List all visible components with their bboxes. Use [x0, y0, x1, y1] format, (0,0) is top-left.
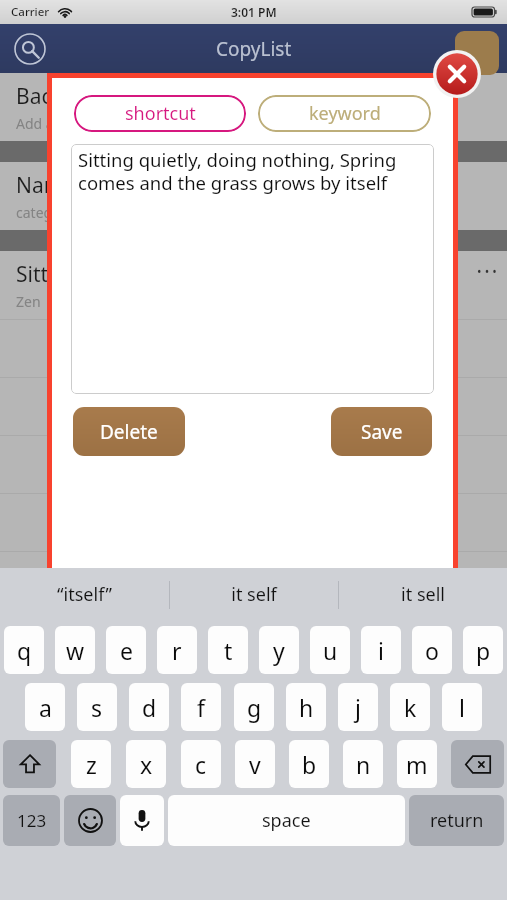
- button[interactable]: Emoji: [64, 795, 116, 846]
- staticText: z: [86, 749, 97, 780]
- staticText: it self: [231, 582, 277, 607]
- button[interactable]: f: [181, 683, 221, 731]
- staticText: n: [356, 749, 371, 780]
- button[interactable]: Sitting: [0, 251, 507, 319]
- button[interactable]: m: [397, 740, 437, 788]
- button[interactable]: 123: [3, 795, 60, 846]
- staticText: b: [302, 749, 317, 780]
- button[interactable]: App icon: [455, 31, 499, 75]
- button[interactable]: Save: [331, 407, 432, 456]
- button[interactable]: u: [310, 626, 350, 674]
- staticText: s: [91, 692, 103, 723]
- button[interactable]: Sitting quietly, doing nothing, Spring c…: [71, 144, 434, 394]
- staticText: t: [224, 635, 233, 666]
- button[interactable]: q: [4, 626, 44, 674]
- staticText: 123: [17, 809, 47, 832]
- staticText: h: [299, 692, 314, 723]
- button[interactable]: Delete: [73, 407, 185, 456]
- staticText: y: [273, 635, 285, 666]
- staticText: Carrier: [11, 4, 50, 20]
- staticText: g: [247, 692, 262, 723]
- button[interactable]: v: [235, 740, 275, 788]
- button[interactable]: “itself”: [0, 568, 169, 621]
- button[interactable]: Search: [10, 29, 50, 69]
- button[interactable]: keyword: [258, 95, 431, 132]
- staticText: m: [406, 749, 428, 780]
- staticText: Sitting quietly, doing nothing, Spring c…: [78, 147, 429, 195]
- button[interactable]: shortcut: [74, 95, 246, 132]
- staticText: c: [195, 749, 207, 780]
- button[interactable]: w: [55, 626, 95, 674]
- staticText: l: [459, 692, 465, 723]
- button[interactable]: p: [463, 626, 503, 674]
- button[interactable]: o: [412, 626, 452, 674]
- button[interactable]: Backspace: [451, 740, 504, 788]
- staticText: e: [120, 635, 133, 666]
- staticText: r: [172, 635, 182, 666]
- staticText: w: [66, 635, 85, 666]
- staticText: Delete: [100, 419, 158, 445]
- staticText: • • •: [477, 263, 497, 279]
- staticText: Save: [361, 419, 403, 445]
- button[interactable]: z: [71, 740, 111, 788]
- button[interactable]: k: [390, 683, 430, 731]
- staticText: Name: [16, 171, 76, 200]
- staticText: keyword: [309, 101, 381, 126]
- staticText: o: [425, 635, 439, 666]
- staticText: v: [249, 749, 261, 780]
- button[interactable]: it sell: [339, 568, 507, 621]
- button[interactable]: a: [25, 683, 65, 731]
- staticText: j: [355, 692, 361, 723]
- staticText: Background: [16, 82, 136, 111]
- button[interactable]: return: [409, 795, 504, 846]
- button[interactable]: c: [181, 740, 221, 788]
- button[interactable]: e: [106, 626, 146, 674]
- button[interactable]: x: [126, 740, 166, 788]
- staticText: 3:01 PM: [231, 4, 277, 20]
- button[interactable]: space: [168, 795, 405, 846]
- button[interactable]: h: [286, 683, 326, 731]
- staticText: f: [197, 692, 205, 723]
- staticText: x: [140, 749, 153, 780]
- button[interactable]: Close: [433, 50, 481, 98]
- button[interactable]: s: [77, 683, 117, 731]
- staticText: Zen: [16, 292, 41, 311]
- staticText: Sitting: [16, 260, 80, 289]
- button[interactable]: n: [343, 740, 383, 788]
- staticText: p: [476, 635, 491, 666]
- staticText: k: [404, 692, 417, 723]
- staticText: d: [142, 692, 157, 723]
- staticText: u: [323, 635, 338, 666]
- staticText: it sell: [401, 582, 445, 607]
- staticText: space: [262, 808, 311, 833]
- button[interactable]: Name: [16, 171, 507, 230]
- staticText: q: [17, 635, 32, 666]
- button[interactable]: l: [442, 683, 482, 731]
- button[interactable]: Shift: [3, 740, 56, 788]
- staticText: a: [39, 692, 52, 723]
- staticText: Add a note: [16, 114, 88, 133]
- button[interactable]: it self: [170, 568, 338, 621]
- button[interactable]: t: [208, 626, 248, 674]
- staticText: CopyList: [216, 36, 292, 62]
- button[interactable]: Dictate: [120, 795, 164, 846]
- button[interactable]: j: [338, 683, 378, 731]
- button[interactable]: i: [361, 626, 401, 674]
- staticText: shortcut: [125, 101, 196, 126]
- button[interactable]: Background: [16, 82, 507, 141]
- staticText: “itself”: [57, 582, 112, 607]
- button[interactable]: r: [157, 626, 197, 674]
- button[interactable]: d: [129, 683, 169, 731]
- staticText: i: [378, 635, 384, 666]
- button[interactable]: g: [234, 683, 274, 731]
- staticText: return: [430, 808, 484, 833]
- button[interactable]: y: [259, 626, 299, 674]
- button[interactable]: b: [289, 740, 329, 788]
- staticText: category: [16, 203, 74, 222]
